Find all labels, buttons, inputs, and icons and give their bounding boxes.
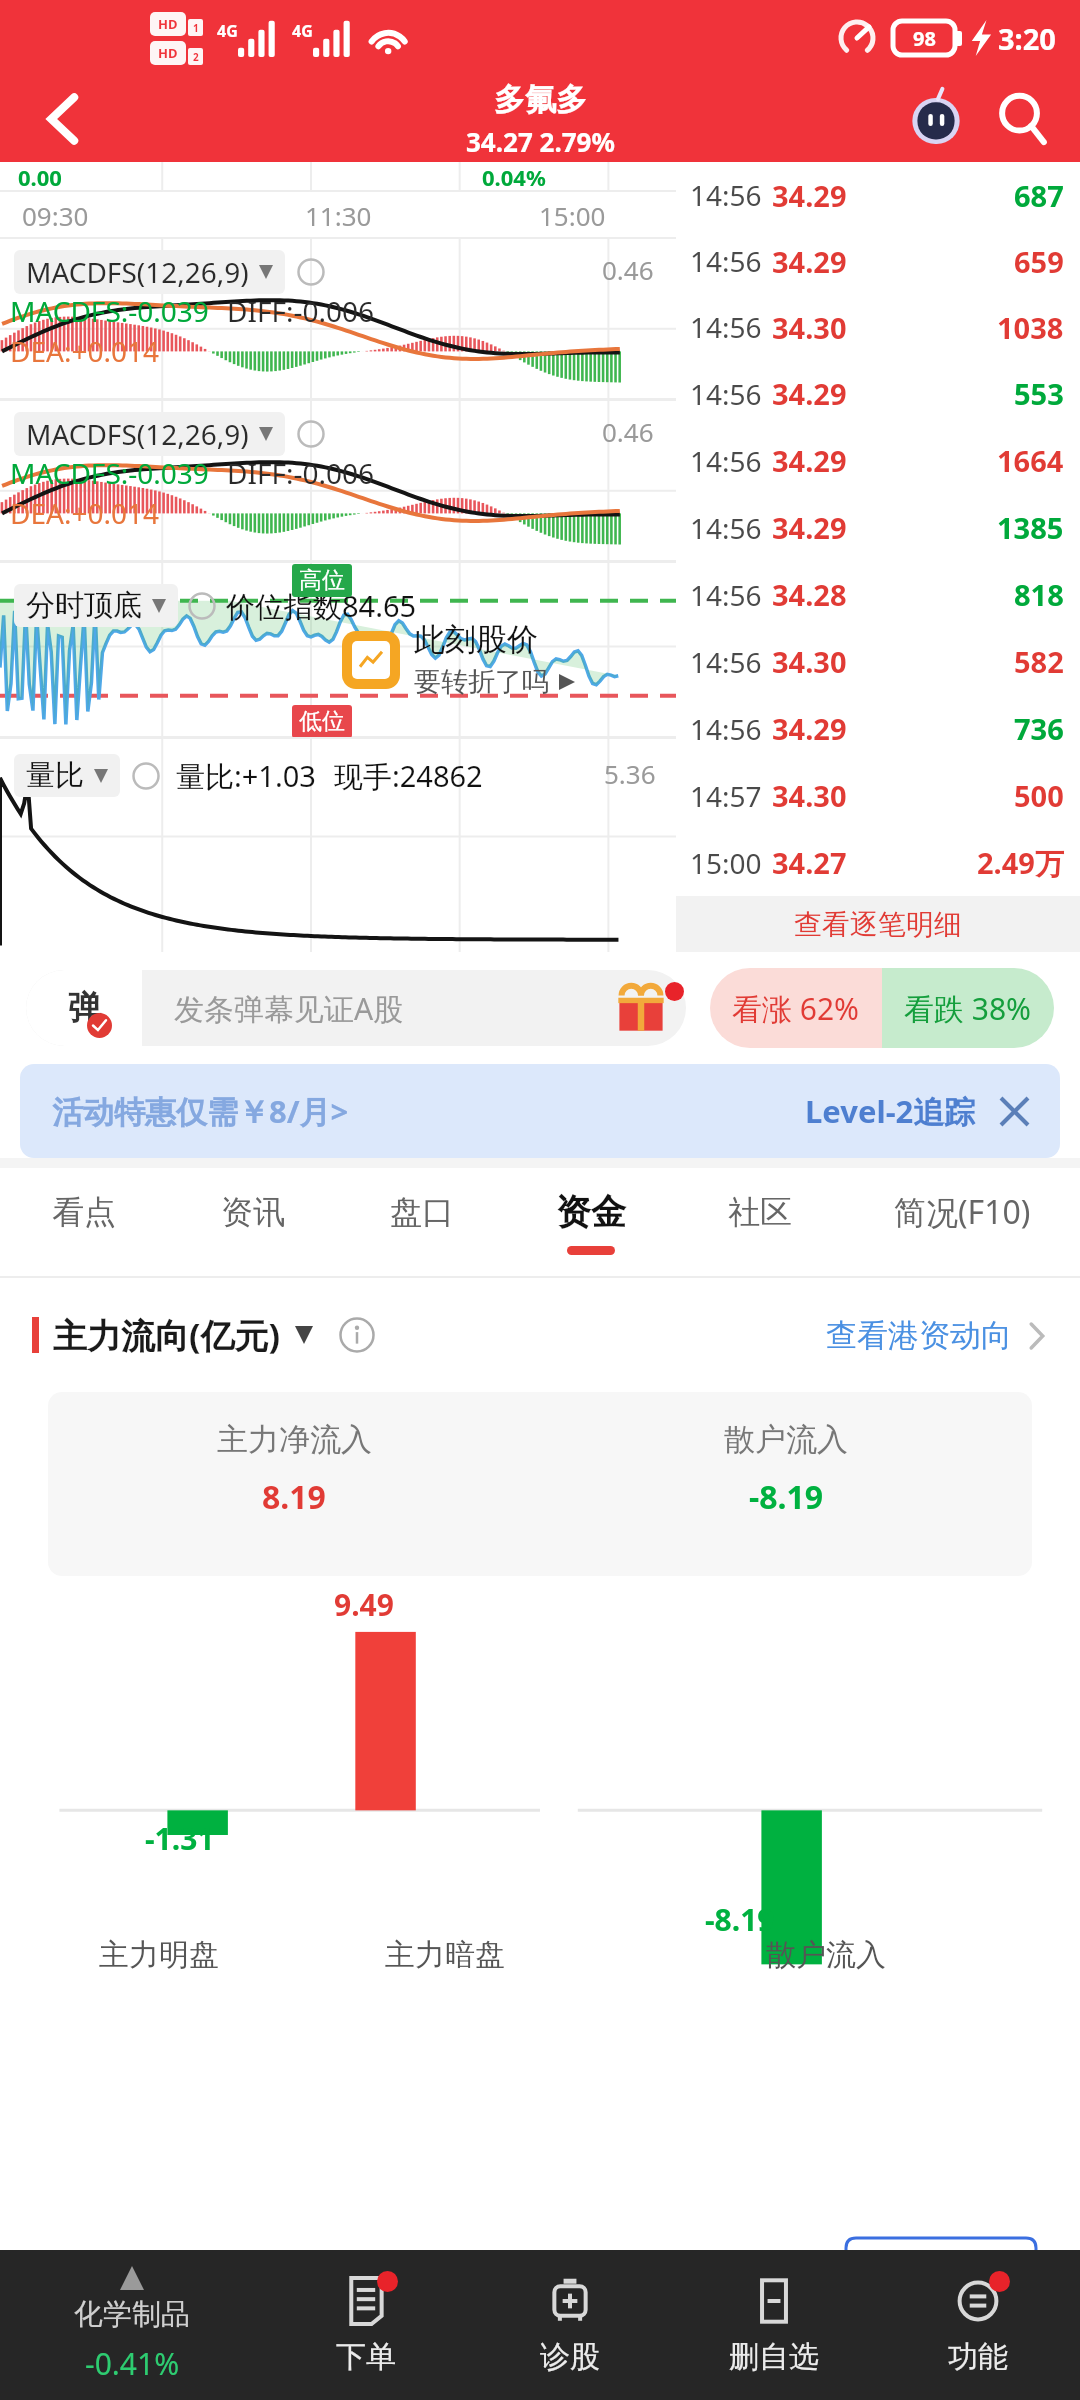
staticText: 34.29: [772, 508, 847, 547]
staticText: 低位: [299, 707, 345, 736]
button[interactable]: 资讯: [168, 1168, 337, 1276]
staticText: 14:56: [690, 643, 762, 681]
button[interactable]: 主力净流入: [48, 1392, 540, 1576]
staticText: 弹: [68, 987, 101, 1029]
button[interactable]: 活动特惠仅需￥8/月>: [20, 1064, 1060, 1158]
staticText: 量比:+1.03: [176, 756, 316, 796]
button[interactable]: 看点: [0, 1168, 168, 1276]
staticText: 价位指数84.65: [226, 586, 417, 626]
staticText: 1385: [997, 508, 1064, 547]
staticText: -1.31: [145, 1818, 215, 1859]
button[interactable]: 此刻股价: [342, 620, 575, 699]
staticText: 0.46: [602, 252, 654, 287]
staticText: 主力净流入: [217, 1420, 372, 1459]
button[interactable]: 14:56: [676, 162, 1080, 228]
button[interactable]: AI assistant: [904, 87, 968, 151]
staticText: 34.30: [772, 308, 847, 347]
staticText: 看点: [52, 1192, 116, 1232]
staticText: 34.27 2.79%: [466, 124, 615, 159]
button[interactable]: 删自选: [672, 2250, 876, 2400]
button[interactable]: 查看逐笔明细: [676, 896, 1080, 952]
button[interactable]: 14:56: [676, 494, 1080, 561]
staticText: 34.30: [772, 642, 847, 681]
staticText: -8.19: [749, 1475, 824, 1519]
staticText: 14:56: [690, 710, 762, 748]
button[interactable]: 看涨 62%: [710, 968, 882, 1048]
staticText: 34.27: [772, 843, 847, 882]
button[interactable]: 散户流入: [540, 1392, 1032, 1576]
staticText: 2: [193, 50, 199, 64]
staticText: DIFF:-0.006: [227, 454, 375, 492]
button[interactable]: 弹: [26, 970, 686, 1046]
button[interactable]: 14:57: [676, 762, 1080, 829]
button[interactable]: MACDFS(12,26,9): [0, 238, 676, 400]
staticText: 500: [1014, 776, 1064, 815]
button[interactable]: Search: [994, 90, 1052, 148]
staticText: 社区: [728, 1192, 792, 1232]
staticText: 582: [1014, 642, 1064, 681]
staticText: 34.29: [772, 709, 847, 748]
button[interactable]: 14:56: [676, 228, 1080, 294]
staticText: 主力流向(亿元): [53, 1312, 281, 1358]
staticText: 盘口: [390, 1192, 454, 1232]
staticText: HD: [158, 15, 178, 33]
staticText: 发条弹幕见证A股: [174, 988, 404, 1029]
staticText: 4G: [292, 20, 313, 42]
button[interactable]: 诊股: [468, 2250, 672, 2400]
staticText: 5.36: [604, 756, 656, 791]
staticText: 14:56: [690, 509, 762, 547]
staticText: DEA:+0.014: [10, 494, 159, 532]
staticText: 分时顶底: [26, 587, 142, 624]
button[interactable]: MACDFS(12,26,9): [0, 400, 676, 562]
button[interactable]: 14:56: [676, 695, 1080, 762]
staticText: 主力暗盘: [385, 1936, 505, 1974]
staticText: 0.46: [602, 414, 654, 449]
staticText: 资金: [556, 1190, 626, 1234]
staticText: 散户流入: [766, 1936, 886, 1974]
button[interactable]: Back: [32, 87, 96, 151]
button[interactable]: 资金: [506, 1168, 675, 1276]
staticText: 散户流入: [724, 1420, 848, 1459]
staticText: 0.00: [18, 162, 62, 192]
staticText: 34.29: [772, 176, 847, 215]
button[interactable]: 主力流向(亿元): [53, 1312, 313, 1358]
button[interactable]: 化学制品: [0, 2250, 264, 2400]
button[interactable]: 看跌 38%: [882, 968, 1054, 1048]
button[interactable]: 简况(F10): [844, 1168, 1080, 1276]
staticText: 多氟多: [494, 80, 587, 119]
button[interactable]: 量比: [0, 738, 676, 952]
staticText: 34.29: [772, 374, 847, 413]
button[interactable]: 分时顶底: [0, 562, 676, 738]
staticText: 4G: [217, 20, 238, 42]
staticText: 98: [913, 25, 936, 52]
button[interactable]: 14:56: [676, 561, 1080, 628]
staticText: 14:56: [690, 442, 762, 480]
staticText: 818: [1014, 575, 1064, 614]
staticText: 简况(F10): [894, 1190, 1031, 1234]
staticText: 1038: [997, 308, 1064, 347]
button[interactable]: Info: [339, 1317, 375, 1353]
staticText: 09:30: [22, 198, 89, 233]
staticText: 主力明盘: [99, 1936, 219, 1974]
staticText: 功能: [948, 2338, 1008, 2376]
button[interactable]: 下单: [264, 2250, 468, 2400]
button[interactable]: 14:56: [676, 427, 1080, 494]
staticText: DIFF:-0.006: [227, 292, 375, 330]
button[interactable]: 14:56: [676, 628, 1080, 695]
staticText: 要转折了吗: [414, 665, 549, 699]
button[interactable]: 14:56: [676, 294, 1080, 360]
staticText: -0.41%: [85, 2343, 180, 2384]
staticText: 3:20: [998, 19, 1056, 58]
button[interactable]: 查看港资动向: [826, 1316, 1048, 1355]
staticText: 11:30: [305, 198, 372, 233]
button[interactable]: 功能: [876, 2250, 1080, 2400]
button[interactable]: Close: [990, 1087, 1038, 1135]
button[interactable]: 社区: [675, 1168, 844, 1276]
button[interactable]: 14:56: [676, 360, 1080, 427]
button[interactable]: 15:00: [676, 829, 1080, 896]
staticText: 15:00: [539, 198, 606, 233]
staticText: DEA:+0.014: [10, 332, 159, 370]
staticText: 34.29: [772, 441, 847, 480]
button[interactable]: 盘口: [337, 1168, 506, 1276]
staticText: 诊股: [540, 2338, 600, 2376]
